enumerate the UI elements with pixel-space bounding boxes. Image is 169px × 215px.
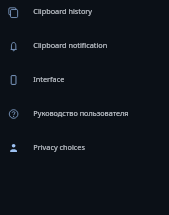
staticText: Руководство пользователя [33, 108, 129, 118]
staticText: Clipboard history [33, 6, 92, 16]
button[interactable]: Clipboard history [0, 0, 169, 29]
staticText: Interface [33, 74, 64, 84]
button[interactable]: Clipboard notification [0, 29, 169, 63]
staticText: Privacy choices [33, 142, 85, 152]
button[interactable]: Руководство пользователя [0, 97, 169, 131]
button[interactable]: Interface [0, 63, 169, 97]
staticText: Clipboard notification [33, 40, 107, 50]
button[interactable]: Privacy choices [0, 131, 169, 165]
